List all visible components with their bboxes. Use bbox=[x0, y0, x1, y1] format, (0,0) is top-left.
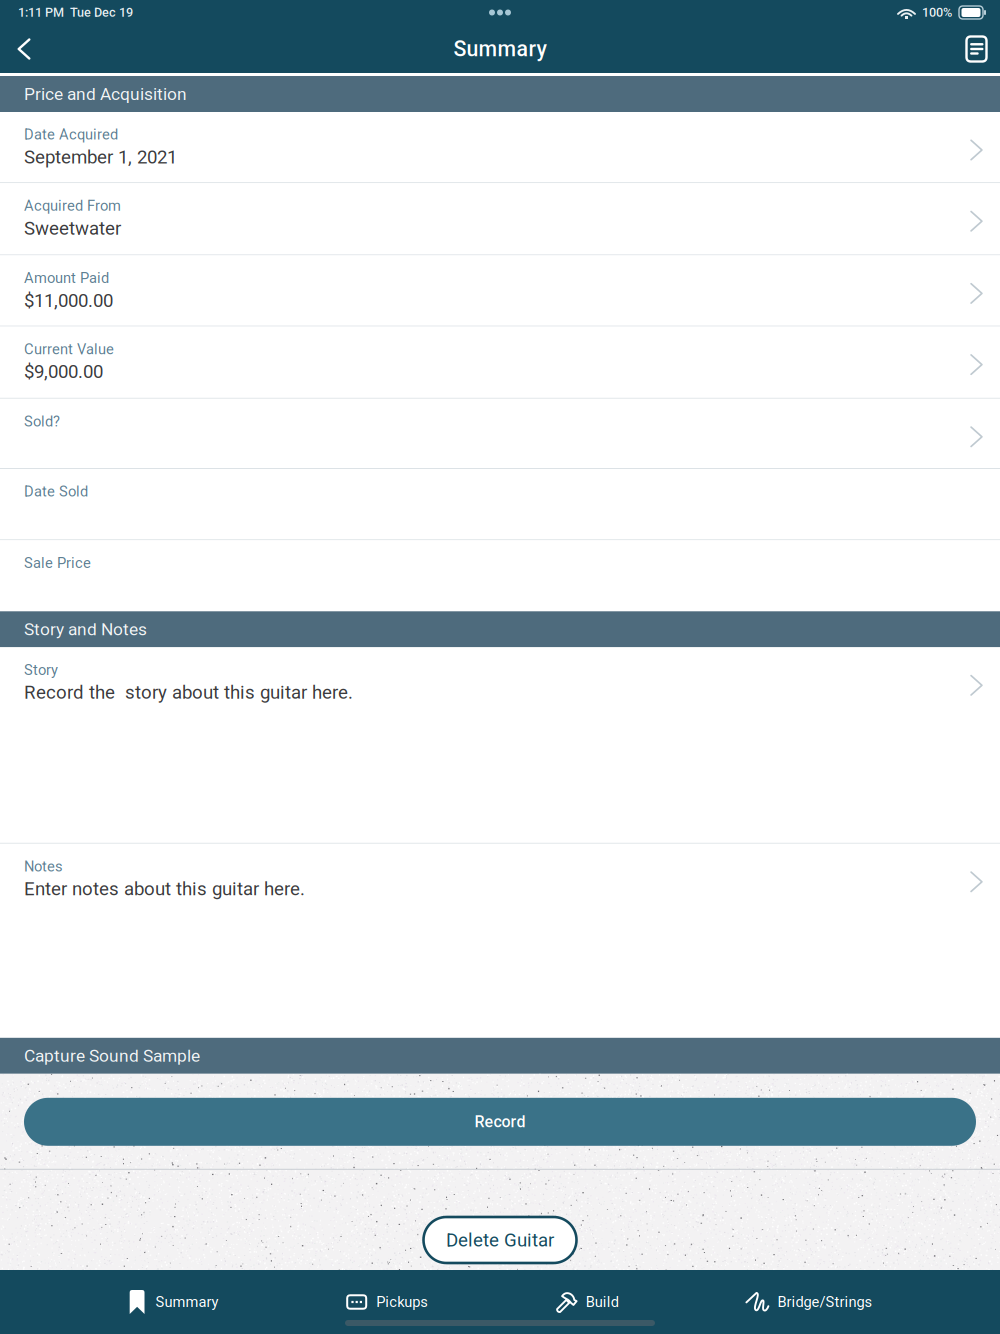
staticText: Sale Price bbox=[24, 554, 91, 571]
button[interactable]: Notes bbox=[960, 31, 990, 67]
button[interactable]: Notes bbox=[0, 844, 1000, 1038]
staticText: Notes bbox=[24, 858, 63, 875]
button[interactable]: Date Acquired bbox=[0, 112, 1000, 182]
staticText: Current Value bbox=[24, 341, 114, 358]
staticText: Story bbox=[24, 661, 58, 678]
button[interactable]: Acquired From bbox=[0, 183, 1000, 254]
button[interactable]: Bridge/Strings bbox=[746, 1286, 872, 1317]
button[interactable]: Sold? bbox=[0, 399, 1000, 468]
staticText: Record the story about this guitar here. bbox=[24, 681, 353, 703]
staticText: 1:11 PM bbox=[18, 5, 64, 20]
staticText: Capture Sound Sample bbox=[24, 1046, 200, 1066]
button[interactable]: Story bbox=[0, 647, 1000, 843]
button[interactable]: Build bbox=[556, 1285, 619, 1318]
button[interactable]: Back bbox=[2, 30, 44, 68]
button[interactable]: Pickups bbox=[346, 1285, 428, 1318]
button[interactable]: Summary bbox=[128, 1284, 219, 1320]
staticText: Record bbox=[474, 1112, 525, 1131]
staticText: Delete Guitar bbox=[446, 1229, 554, 1251]
staticText: Story and Notes bbox=[24, 619, 147, 639]
staticText: Acquired From bbox=[24, 197, 121, 214]
staticText: 100% bbox=[922, 5, 952, 20]
button[interactable]: Record bbox=[0, 1074, 1000, 1146]
staticText: Sweetwater bbox=[24, 217, 121, 239]
button[interactable]: Delete Guitar bbox=[423, 1217, 576, 1263]
staticText: Date Acquired bbox=[24, 126, 118, 143]
staticText: September 1, 2021 bbox=[24, 146, 177, 168]
button[interactable]: Amount Paid bbox=[0, 255, 1000, 326]
staticText: $11,000.00 bbox=[24, 290, 113, 311]
staticText: Bridge/Strings bbox=[777, 1293, 872, 1311]
staticText: Tue Dec 19 bbox=[64, 5, 133, 20]
button[interactable]: Sale Price bbox=[0, 540, 1000, 611]
button[interactable]: Current Value bbox=[0, 327, 1000, 398]
staticText: Date Sold bbox=[24, 483, 88, 500]
staticText: Amount Paid bbox=[24, 269, 109, 287]
staticText: Summary bbox=[156, 1293, 219, 1311]
staticText: Summary bbox=[453, 36, 546, 61]
staticText: Pickups bbox=[376, 1293, 428, 1311]
staticText: Price and Acquisition bbox=[24, 84, 187, 104]
staticText: $9,000.00 bbox=[24, 361, 103, 383]
staticText: Enter notes about this guitar here. bbox=[24, 878, 305, 900]
button[interactable]: Date Sold bbox=[0, 469, 1000, 539]
staticText: Build bbox=[586, 1293, 619, 1311]
staticText: Sold? bbox=[24, 413, 60, 430]
